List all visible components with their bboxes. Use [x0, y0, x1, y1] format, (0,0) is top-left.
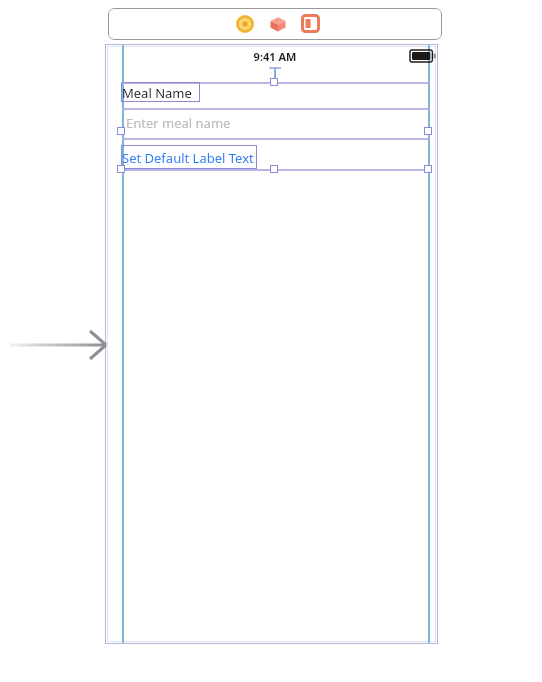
staticText: 9:41 AM	[240, 49, 310, 65]
button[interactable]: Exit	[301, 14, 320, 33]
staticText: Enter meal name	[126, 114, 231, 132]
button[interactable]: Meal Name	[121, 82, 200, 102]
button[interactable]: View Controller	[236, 15, 254, 33]
button[interactable]: Set Default Label Text	[121, 145, 257, 169]
staticText: Set Default Label Text	[122, 149, 254, 167]
button[interactable]: First Responder	[269, 15, 287, 33]
button[interactable]: Enter meal name	[122, 110, 428, 136]
staticText: Meal Name	[122, 84, 192, 102]
